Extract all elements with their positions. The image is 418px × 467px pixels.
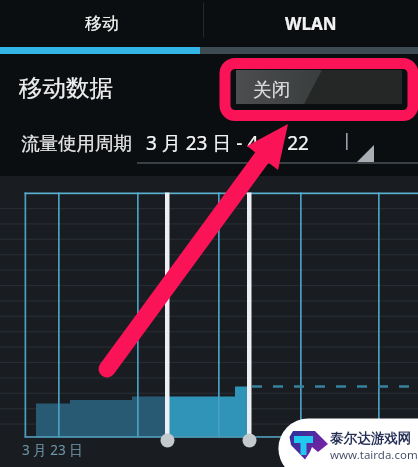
staticText: 移动数据 <box>19 73 113 103</box>
button[interactable]: 关闭 <box>236 70 402 104</box>
staticText: 关闭 <box>253 78 290 101</box>
staticText: 3 月 23 日 - 4 月 22 <box>146 130 309 156</box>
button[interactable]: 3 月 23 日 - 4 月 22 <box>137 128 377 166</box>
staticText: 流量使用周期 <box>21 132 132 155</box>
button[interactable]: 移动 <box>0 0 203 46</box>
staticText: WLAN <box>285 12 337 35</box>
staticText: 移动 <box>85 13 119 34</box>
staticText: www.tairda.com <box>330 447 418 463</box>
button[interactable]: WLAN <box>203 0 418 46</box>
staticText: 3 月 23 日 <box>22 441 83 459</box>
staticText: 泰尔达游戏网 <box>330 430 411 447</box>
